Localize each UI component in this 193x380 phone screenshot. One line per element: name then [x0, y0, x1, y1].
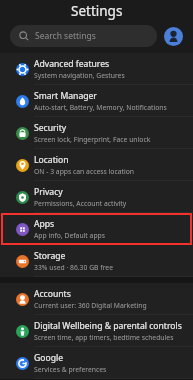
staticText: 33% used · 86.30 GB free	[34, 263, 113, 272]
button[interactable]: Smart Manager	[0, 85, 193, 117]
staticText: Permissions, Account activity	[34, 199, 127, 208]
staticText: Services & preferences	[34, 365, 107, 374]
staticText: Advanced features	[34, 58, 110, 70]
staticText: Storage	[34, 250, 66, 262]
button[interactable]: Digital Wellbeing & parental controls	[0, 315, 193, 347]
staticText: ON - 3 apps can access location	[34, 167, 135, 176]
staticText: Screen lock, Fingerprint, Face unlock	[34, 135, 151, 144]
staticText: Google	[34, 352, 64, 364]
button[interactable]: Accounts	[0, 283, 193, 315]
staticText: Screen time, app timers, bedtime schedul…	[34, 333, 174, 342]
staticText: Auto-start, Battery, Memory, Notificatio…	[34, 103, 167, 112]
staticText: Current user: 360 Digital Marketing	[34, 301, 147, 310]
staticText: Privacy	[34, 186, 63, 198]
button[interactable]: Google	[0, 347, 193, 379]
button[interactable]: Search settings	[10, 25, 157, 47]
button[interactable]: Location	[0, 149, 193, 181]
staticText: Apps	[34, 218, 55, 230]
staticText: Accounts	[34, 288, 71, 300]
staticText: Security	[34, 122, 67, 134]
staticText: Search settings	[35, 30, 96, 42]
staticText: Digital Wellbeing & parental controls	[34, 320, 182, 332]
button[interactable]: Storage	[0, 245, 193, 277]
staticText: Smart Manager	[34, 90, 97, 102]
button[interactable]: Security	[0, 117, 193, 149]
button[interactable]: Privacy	[0, 181, 193, 213]
button[interactable]: Advanced features	[0, 53, 193, 85]
staticText: Settings	[71, 2, 123, 20]
button[interactable]: Apps	[0, 213, 193, 245]
staticText: System navigation, Gestures	[34, 71, 125, 80]
staticText: App info, Default apps	[34, 231, 106, 240]
button[interactable]: Account	[164, 27, 183, 46]
staticText: Location	[34, 154, 69, 166]
